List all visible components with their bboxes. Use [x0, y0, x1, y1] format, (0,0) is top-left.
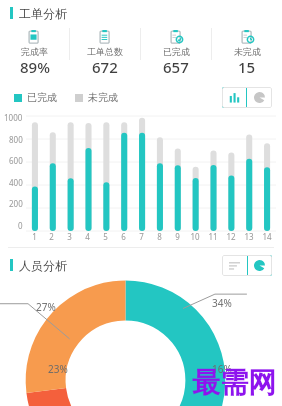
button[interactable]: 未完成 [75, 91, 118, 104]
staticText: 672 [92, 57, 118, 77]
staticText: 23% [48, 362, 68, 376]
button[interactable]: 工单总数 [70, 28, 140, 78]
button[interactable]: 未完成 [212, 28, 282, 78]
button[interactable]: List view [222, 255, 247, 276]
staticText: 已完成 [163, 46, 190, 57]
staticText: 89% [20, 57, 50, 77]
staticText: 未完成 [88, 91, 118, 104]
staticText: 3 [67, 231, 72, 242]
staticText: 10 [190, 231, 200, 242]
button[interactable]: 已完成 [14, 91, 57, 104]
staticText: 34% [212, 296, 232, 310]
staticText: 工单分析 [19, 6, 67, 21]
staticText: 0 [18, 220, 23, 231]
staticText: 200 [9, 198, 23, 209]
staticText: 800 [9, 134, 23, 145]
staticText: 1 [32, 231, 37, 242]
staticText: 未完成 [234, 46, 261, 57]
staticText: 工单总数 [87, 46, 123, 57]
staticText: 13 [244, 231, 254, 242]
staticText: 已完成 [27, 91, 57, 104]
staticText: 400 [9, 177, 23, 188]
staticText: 15 [238, 57, 256, 77]
staticText: 8 [157, 231, 162, 242]
staticText: 27% [36, 300, 56, 314]
staticText: 9 [175, 231, 180, 242]
staticText: 2 [49, 231, 54, 242]
staticText: 12 [226, 231, 236, 242]
staticText: 6 [121, 231, 126, 242]
staticText: 657 [163, 57, 189, 77]
button[interactable]: 完成率 [0, 28, 69, 78]
button[interactable]: Pie chart [247, 255, 272, 276]
staticText: 1000 [4, 112, 23, 123]
staticText: 最需网 [192, 365, 276, 400]
button[interactable]: Bar chart [222, 87, 247, 108]
button[interactable]: 已完成 [141, 28, 211, 78]
staticText: 7 [139, 231, 144, 242]
staticText: 11 [208, 231, 218, 242]
staticText: 14 [262, 231, 272, 242]
staticText: 人员分析 [19, 258, 67, 273]
staticText: 16% [212, 362, 232, 376]
staticText: 完成率 [21, 46, 48, 57]
staticText: 5 [103, 231, 108, 242]
staticText: 600 [9, 155, 23, 166]
button[interactable]: Pie chart [247, 87, 272, 108]
staticText: 4 [85, 231, 90, 242]
